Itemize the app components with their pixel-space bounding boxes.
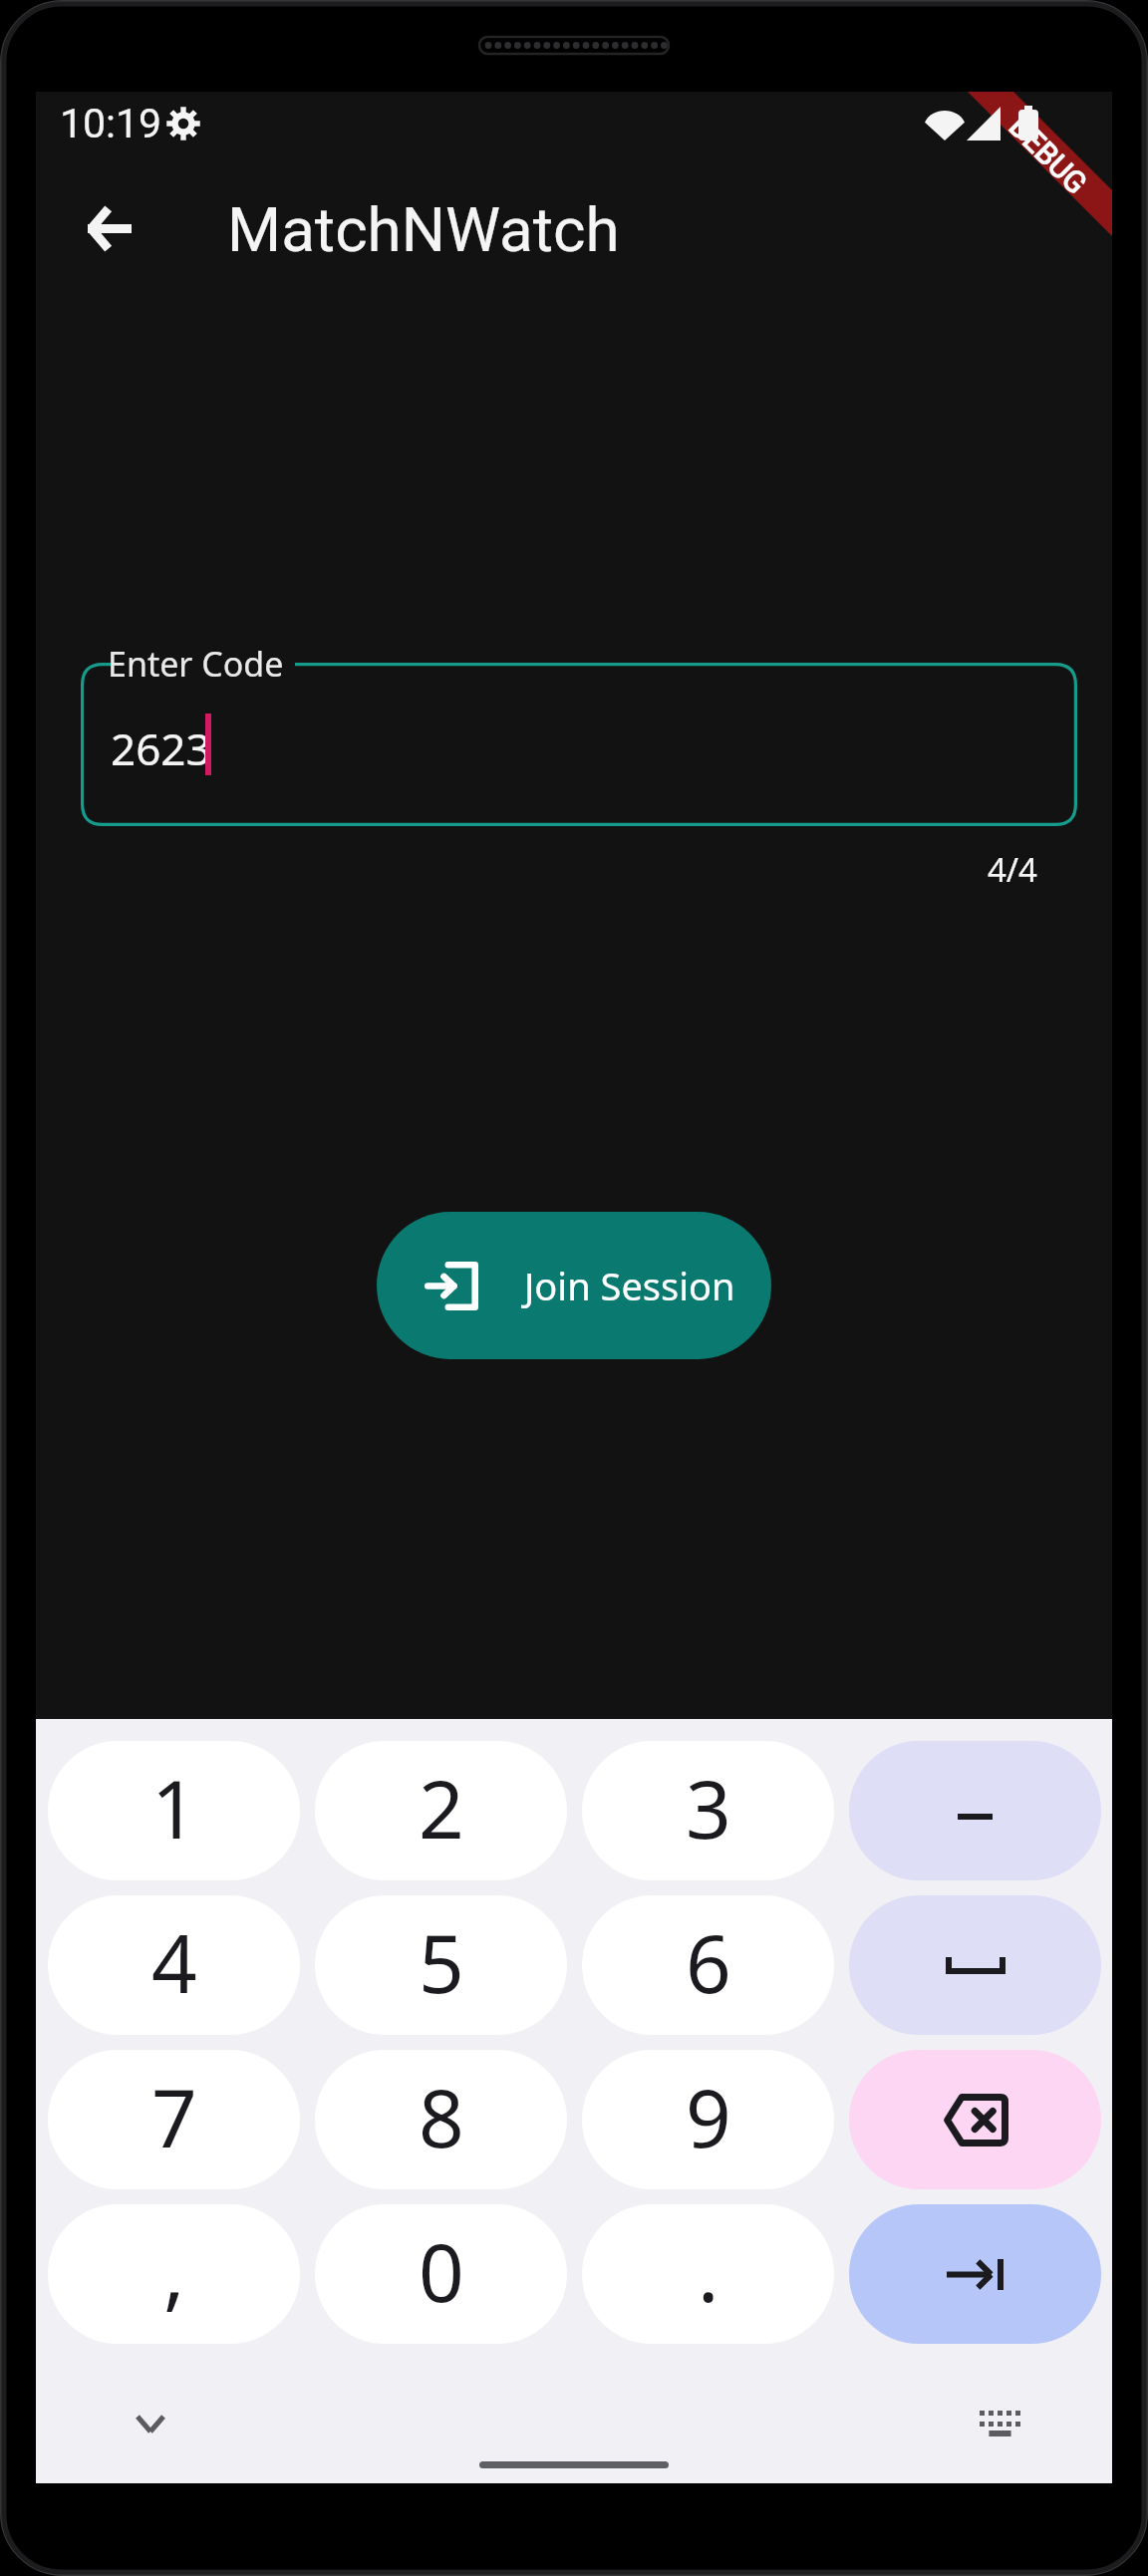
staticText: 7 (151, 2062, 197, 2170)
button[interactable]: 4 (48, 1895, 300, 2035)
button[interactable] (849, 1895, 1101, 2035)
staticText: 4/4 (36, 847, 1037, 892)
button[interactable]: 9 (582, 2050, 834, 2189)
staticText: 6 (686, 1907, 731, 2016)
button[interactable]: 0 (315, 2204, 567, 2344)
staticText: . (698, 2216, 719, 2325)
button[interactable]: Join Session (377, 1212, 771, 1359)
staticText: 10:19 (60, 100, 162, 147)
staticText: 9 (686, 2062, 731, 2170)
staticText: DEBUG (1002, 109, 1094, 201)
staticText: , (163, 2216, 185, 2325)
button[interactable]: 5 (315, 1895, 567, 2035)
button[interactable]: 6 (582, 1895, 834, 2035)
staticText: 0 (419, 2216, 464, 2325)
button[interactable]: Switch keyboard (960, 2384, 1039, 2463)
button[interactable]: , (48, 2204, 300, 2344)
button[interactable]: 1 (48, 1741, 300, 1880)
staticText: 3 (686, 1753, 731, 1861)
button[interactable]: Hide keyboard (111, 2384, 190, 2463)
staticText: Enter Code (108, 641, 284, 687)
staticText: Join Session (524, 1260, 735, 1311)
staticText: 2623 (111, 718, 211, 778)
staticText: 2 (419, 1753, 464, 1861)
button[interactable] (849, 1741, 1101, 1880)
button[interactable]: 8 (315, 2050, 567, 2189)
button[interactable]: Back (50, 168, 169, 288)
button[interactable]: 2 (315, 1741, 567, 1880)
staticText: 5 (419, 1907, 464, 2016)
button[interactable]: . (582, 2204, 834, 2344)
staticText: MatchNWatch (227, 193, 620, 266)
button[interactable]: 3 (582, 1741, 834, 1880)
button[interactable] (849, 2050, 1101, 2189)
staticText: 1 (151, 1753, 197, 1861)
button[interactable] (849, 2204, 1101, 2344)
staticText: 4 (151, 1907, 197, 2016)
button[interactable]: 7 (48, 2050, 300, 2189)
staticText: 8 (419, 2062, 464, 2170)
